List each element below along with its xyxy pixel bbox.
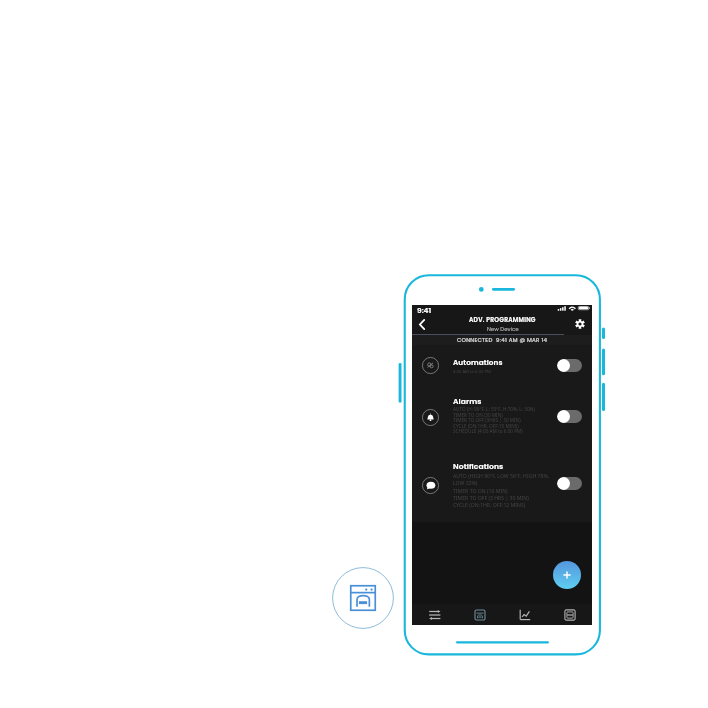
staticText: 9:41: [417, 305, 432, 315]
button[interactable]: Toggle Notifications: [557, 477, 582, 490]
button[interactable]: Back: [415, 317, 429, 331]
button[interactable]: Alarms icon: [422, 409, 439, 426]
button[interactable]: Notifications icon: [422, 477, 439, 494]
staticText: CYCLE (ON:1HR, OFF:12 MINS): [453, 501, 526, 508]
button[interactable]: Settings: [573, 317, 587, 331]
staticText: LOW 32%): [453, 479, 478, 486]
button[interactable]: Toggle Alarms: [557, 410, 582, 423]
button[interactable]: Toggle Automations: [557, 359, 582, 372]
staticText: TIMER TO ON (30 MIN): [453, 412, 503, 418]
staticText: CONNECTED 9:41 AM @ MAR 14: [457, 336, 548, 344]
button[interactable]: Appliance: [332, 567, 394, 629]
staticText: New Device: [487, 325, 519, 333]
staticText: TIMER TO OFF (3HRS | 30 MIN): [453, 417, 521, 423]
button[interactable]: Stats: [502, 604, 547, 625]
button[interactable]: Controls: [412, 604, 457, 625]
button[interactable]: Device: [457, 604, 502, 625]
staticText: CYCLE (ON:1HR, OFF:15 MINS): [453, 423, 519, 429]
button[interactable]: Schedule: [547, 604, 592, 625]
staticText: ADV. PROGRAMMING: [469, 316, 536, 324]
button[interactable]: Automations icon: [422, 357, 439, 374]
staticText: AUTO (HIGH 90°F, LOW 56°F, HIGH 78%,: [453, 472, 550, 479]
staticText: Notifications: [453, 461, 504, 472]
staticText: 4:00 AM to 6:30 PM: [453, 369, 491, 375]
staticText: Automations: [453, 357, 503, 367]
staticText: Alarms: [453, 396, 482, 407]
staticText: TIMER TO ON (10 MIN): [453, 487, 508, 494]
staticText: SCHEDULE (4:00 AM to 6:00 PM): [453, 428, 523, 434]
button[interactable]: Add: [553, 561, 581, 589]
staticText: AUTO (H: 90°F, L: 55°F, H:70%, L: 30%): [453, 406, 535, 412]
staticText: TIMER TO OFF (3 HRS | 30 MIN): [453, 494, 529, 501]
